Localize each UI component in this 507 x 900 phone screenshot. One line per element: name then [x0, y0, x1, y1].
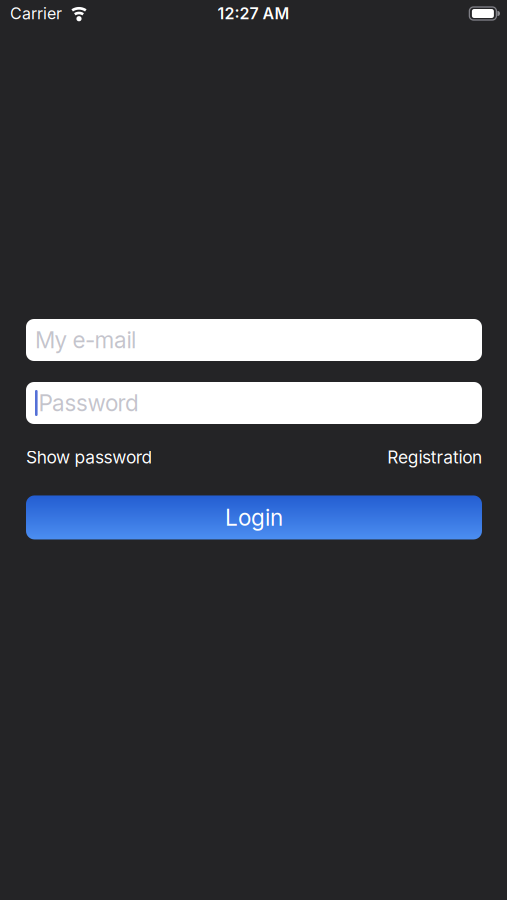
staticText: Show password: [26, 447, 152, 467]
button[interactable]: Login: [26, 495, 482, 539]
button[interactable]: Show password: [26, 447, 152, 467]
button[interactable]: Password: [26, 382, 482, 424]
staticText: 12:27 AM: [217, 4, 289, 23]
staticText: Registration: [387, 447, 482, 467]
button[interactable]: Registration: [387, 447, 482, 467]
staticText: Login: [225, 504, 283, 531]
staticText: Password: [39, 390, 139, 416]
staticText: My e-mail: [35, 327, 136, 353]
staticText: Carrier: [10, 4, 62, 23]
button[interactable]: My e-mail: [26, 319, 482, 361]
